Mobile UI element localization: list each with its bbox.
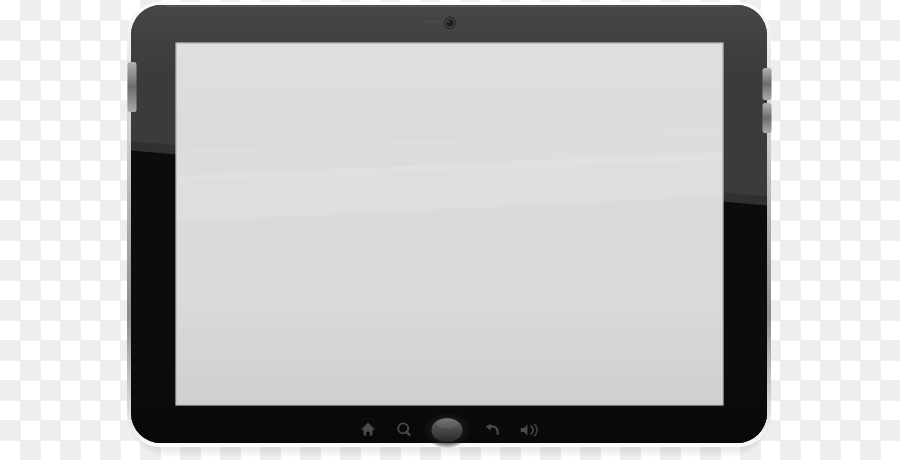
button[interactable]: Home button [427,416,467,444]
button[interactable]: Search [391,416,421,444]
button[interactable]: Volume [514,416,544,444]
button[interactable]: Home [355,416,385,444]
button[interactable]: Back [479,416,509,444]
